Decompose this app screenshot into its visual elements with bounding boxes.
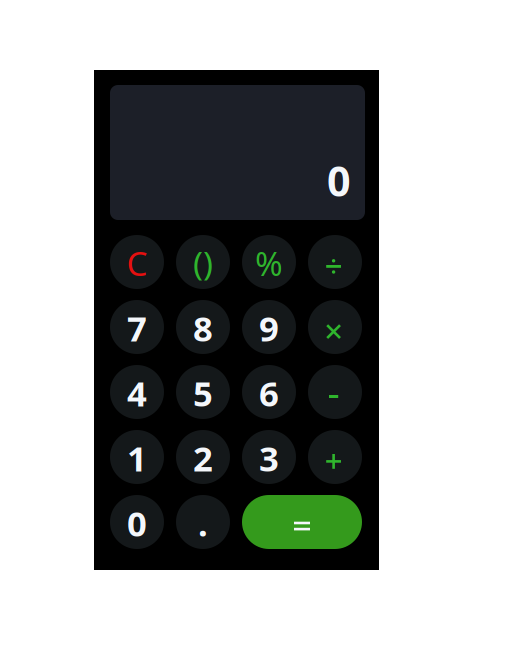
- button[interactable]: C: [110, 235, 164, 289]
- staticText: 4: [127, 370, 147, 416]
- staticText: 0: [327, 153, 351, 208]
- button[interactable]: 6: [242, 365, 296, 419]
- button[interactable]: 8: [176, 300, 230, 354]
- staticText: %: [255, 241, 283, 285]
- staticText: 8: [193, 305, 213, 351]
- button[interactable]: 0: [110, 495, 164, 549]
- staticText: (): [193, 241, 213, 285]
- staticText: 2: [193, 435, 213, 481]
- staticText: C: [126, 241, 147, 285]
- button[interactable]: 7: [110, 300, 164, 354]
- staticText: 9: [259, 305, 279, 351]
- button[interactable]: Equals: [242, 495, 362, 549]
- button[interactable]: 4: [110, 365, 164, 419]
- staticText: 0: [127, 500, 147, 546]
- staticText: .: [198, 500, 208, 546]
- button[interactable]: 3: [242, 430, 296, 484]
- button[interactable]: 5: [176, 365, 230, 419]
- staticText: 6: [259, 370, 279, 416]
- staticText: 7: [127, 305, 147, 351]
- button[interactable]: 1: [110, 430, 164, 484]
- button[interactable]: %: [242, 235, 296, 289]
- staticText: 5: [193, 370, 213, 416]
- staticText: 3: [259, 435, 279, 481]
- button[interactable]: Divide: [308, 235, 362, 289]
- button[interactable]: Plus: [308, 430, 362, 484]
- button[interactable]: 9: [242, 300, 296, 354]
- staticText: 1: [127, 435, 147, 481]
- button[interactable]: Minus: [308, 365, 362, 419]
- button[interactable]: .: [176, 495, 230, 549]
- button[interactable]: 2: [176, 430, 230, 484]
- button[interactable]: Multiply: [308, 300, 362, 354]
- button[interactable]: (): [176, 235, 230, 289]
